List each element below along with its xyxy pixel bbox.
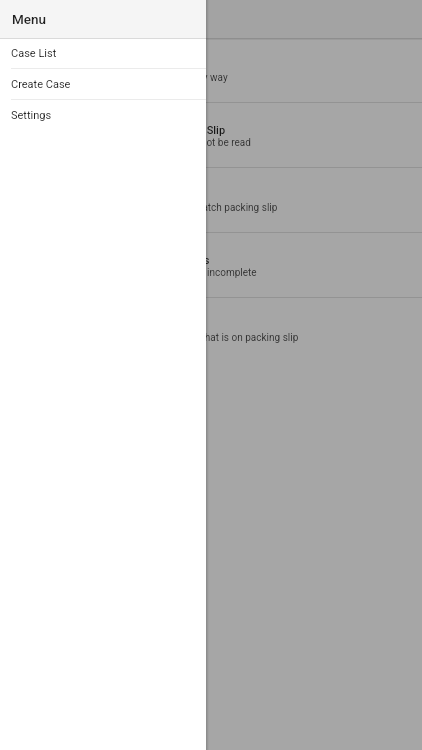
button[interactable]: Close navigation drawer <box>0 0 422 750</box>
button[interactable]: Settings <box>0 100 206 131</box>
staticText: Damaged, Torn or Unreadable Packing Slip <box>16 124 226 137</box>
button[interactable]: Damaged Package or Product <box>0 40 422 103</box>
staticText: The package or its product damaged in an… <box>16 72 228 84</box>
button[interactable]: Create Case <box>0 69 206 100</box>
staticText: The product that was received does not m… <box>16 202 278 214</box>
button[interactable]: Damaged, Torn or Unreadable Packing Slip <box>0 103 422 168</box>
button[interactable]: Case List <box>0 39 206 69</box>
button[interactable]: Open navigation drawer <box>0 0 40 38</box>
staticText: Settings <box>11 109 52 122</box>
button[interactable]: Shipment is Short or has Missing Items <box>0 233 422 298</box>
staticText: The slip that came with this shipment ca… <box>16 137 251 149</box>
staticText: There are more items received here than … <box>16 332 299 344</box>
button[interactable]: Overage <box>0 298 422 363</box>
staticText: Case List <box>11 47 57 60</box>
staticText: Case List <box>40 11 96 27</box>
staticText: Damaged Package or Product <box>16 59 163 72</box>
staticText: Menu <box>12 11 47 27</box>
staticText: The shipment that was received is short … <box>16 267 257 279</box>
staticText: Shipment is Short or has Missing Items <box>16 254 210 267</box>
button[interactable]: Wrong Item or Product Received <box>0 168 422 233</box>
staticText: Create Case <box>11 78 71 91</box>
